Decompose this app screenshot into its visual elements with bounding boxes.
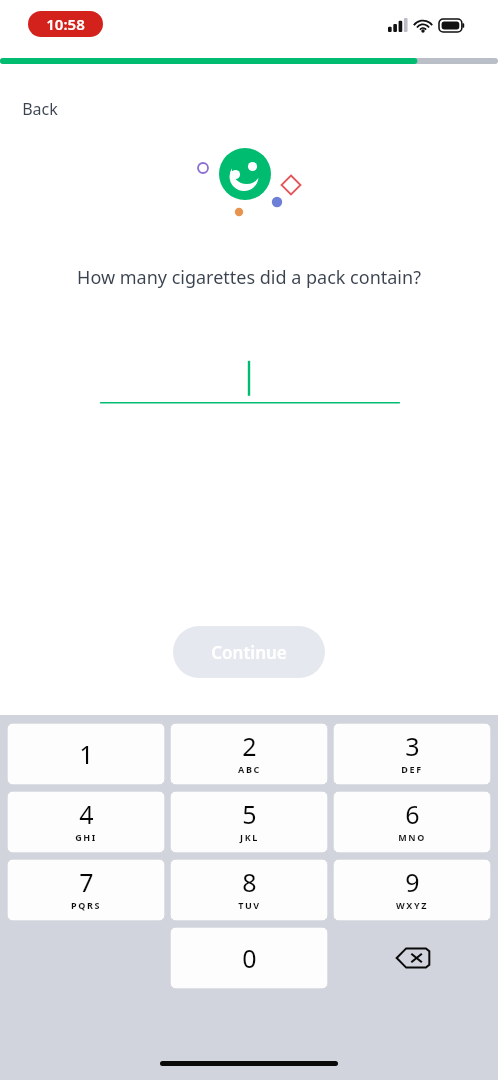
button[interactable]: 8 — [170, 859, 328, 921]
staticText: MNO — [398, 831, 426, 843]
staticText: Back — [22, 98, 58, 120]
staticText: 6 — [405, 797, 420, 831]
staticText: 4 — [79, 797, 94, 831]
staticText: GHI — [75, 831, 97, 843]
button[interactable]: 1 — [7, 723, 165, 785]
button[interactable]: 0 — [170, 927, 328, 989]
staticText: Continue — [211, 641, 287, 664]
button[interactable]: Continue — [173, 626, 325, 678]
staticText: JKL — [240, 831, 259, 843]
staticText: How many cigarettes did a pack contain? — [77, 265, 421, 290]
staticText: 9 — [405, 865, 420, 899]
button[interactable] — [0, 350, 498, 410]
button[interactable]: 4 — [7, 791, 165, 853]
staticText: 2 — [242, 729, 257, 763]
staticText: 7 — [79, 865, 94, 899]
staticText: 0 — [242, 941, 257, 975]
staticText: 1 — [79, 737, 94, 771]
staticText: 10:58 — [46, 14, 85, 34]
staticText: PQRS — [71, 899, 101, 911]
staticText: 8 — [242, 865, 257, 899]
staticText: TUV — [238, 899, 261, 911]
button[interactable]: Backspace — [333, 927, 493, 989]
staticText: 3 — [405, 729, 420, 763]
button[interactable]: Back — [10, 92, 70, 126]
button[interactable]: 7 — [7, 859, 165, 921]
staticText: WXYZ — [396, 899, 428, 911]
button[interactable]: 6 — [333, 791, 491, 853]
staticText: DEF — [401, 763, 423, 775]
button[interactable]: 9 — [333, 859, 491, 921]
staticText: ABC — [238, 763, 261, 775]
button[interactable]: 2 — [170, 723, 328, 785]
button[interactable]: 5 — [170, 791, 328, 853]
button[interactable]: 3 — [333, 723, 491, 785]
staticText: 5 — [242, 797, 257, 831]
